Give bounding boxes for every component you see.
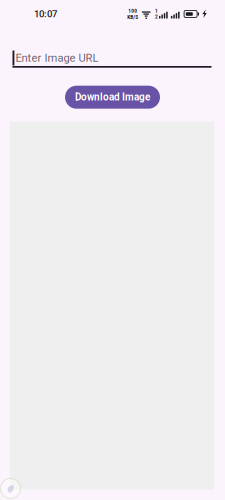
staticText: 100 <box>128 8 137 14</box>
button[interactable]: Download Image <box>65 86 160 109</box>
staticText: KB/S <box>127 14 138 20</box>
staticText: 2 <box>155 14 158 20</box>
button[interactable]: Enter Image URL <box>0 26 211 68</box>
staticText: 1 <box>155 8 158 14</box>
staticText: Enter Image URL <box>15 51 98 64</box>
staticText: 10:07 <box>34 8 57 20</box>
staticText: Download Image <box>75 91 150 103</box>
